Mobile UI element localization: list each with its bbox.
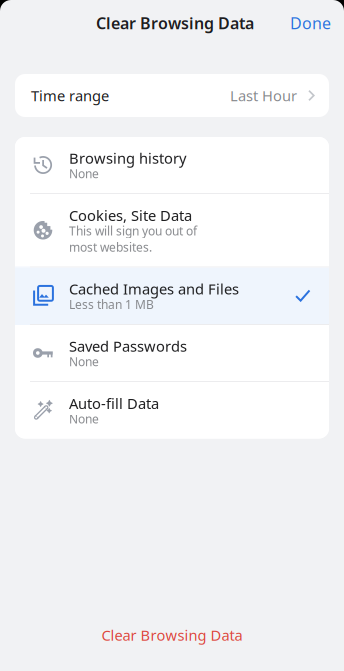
- staticText: Cached Images and Files: [69, 279, 239, 299]
- button[interactable]: Clear Browsing Data: [0, 614, 344, 656]
- staticText: Cookies, Site Data: [69, 205, 192, 225]
- staticText: Time range: [31, 85, 109, 105]
- staticText: None: [69, 353, 99, 370]
- staticText: This will sign you out of: [69, 223, 197, 239]
- staticText: most websites.: [69, 239, 152, 255]
- staticText: Browsing history: [69, 148, 186, 168]
- staticText: Less than 1 MB: [69, 296, 154, 313]
- button[interactable]: Done: [277, 1, 344, 45]
- staticText: Last Hour: [230, 85, 297, 105]
- button[interactable]: Time range: [15, 74, 329, 117]
- staticText: None: [69, 165, 99, 182]
- button[interactable]: Browsing history: [15, 137, 329, 193]
- staticText: Clear Browsing Data: [96, 12, 254, 34]
- staticText: Saved Passwords: [69, 336, 187, 356]
- staticText: None: [69, 411, 99, 427]
- staticText: Auto-fill Data: [69, 393, 159, 413]
- button[interactable]: Cached Images and Files: [15, 267, 329, 324]
- staticText: Done: [290, 12, 331, 34]
- staticText: Clear Browsing Data: [101, 625, 242, 645]
- button[interactable]: Saved Passwords: [15, 325, 329, 381]
- button[interactable]: Cookies, Site Data: [15, 194, 329, 266]
- button[interactable]: Auto-fill Data: [15, 382, 329, 438]
